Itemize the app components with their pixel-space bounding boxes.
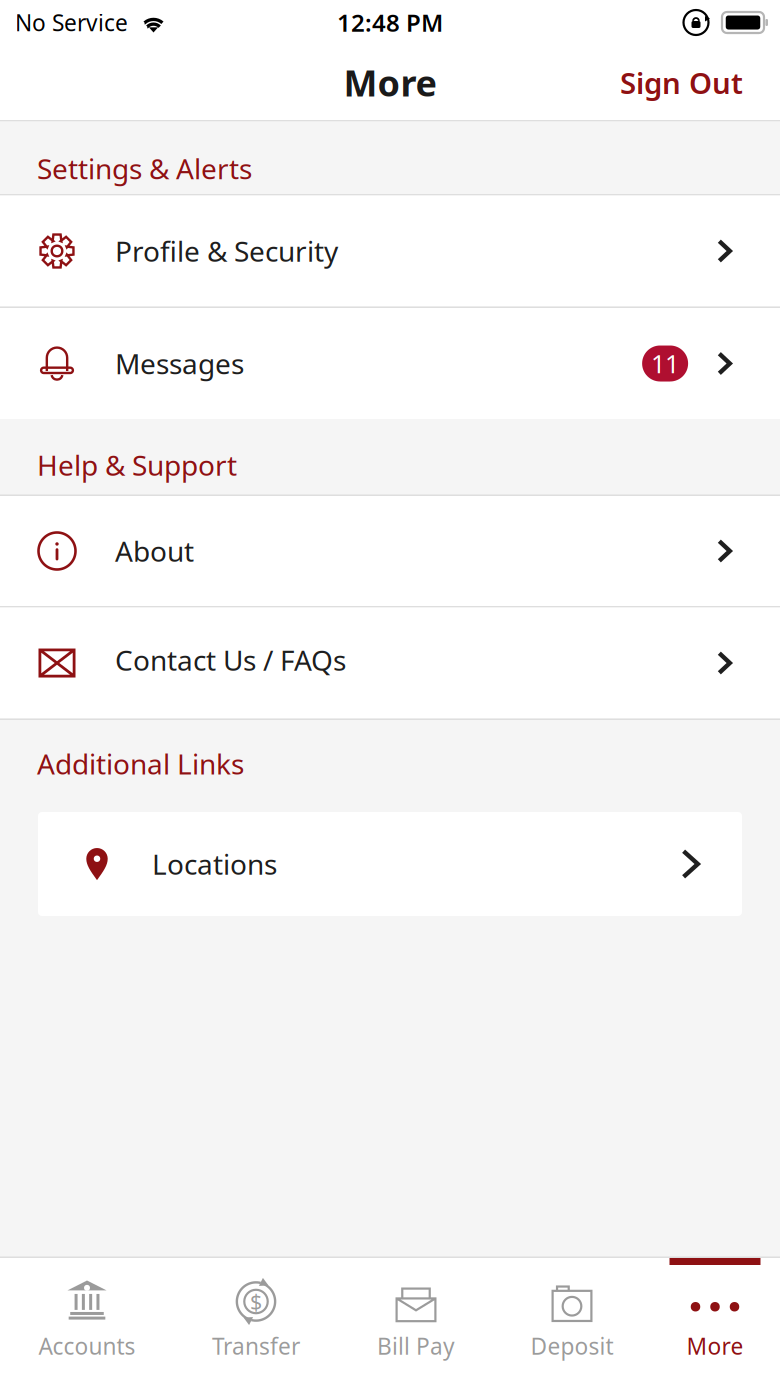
- button[interactable]: About: [0, 496, 780, 606]
- staticText: Profile & Security: [115, 232, 338, 270]
- staticText: Locations: [152, 845, 277, 883]
- staticText: More: [343, 59, 436, 106]
- staticText: No Service: [15, 7, 128, 37]
- staticText: $: [250, 1287, 262, 1316]
- button[interactable]: Bill Pay: [338, 1258, 494, 1387]
- button[interactable]: Deposit: [494, 1258, 650, 1387]
- staticText: About: [115, 532, 194, 570]
- button[interactable]: Contact Us / FAQs: [0, 607, 780, 718]
- button[interactable]: More: [650, 1258, 780, 1387]
- staticText: Sign Out: [620, 63, 743, 102]
- button[interactable]: Locations: [38, 812, 742, 916]
- staticText: 12:48 PM: [337, 7, 443, 38]
- button[interactable]: Profile & Security: [0, 195, 780, 306]
- staticText: Additional Links: [37, 745, 244, 782]
- button[interactable]: $: [174, 1258, 338, 1387]
- staticText: Deposit: [530, 1331, 613, 1361]
- button[interactable]: Sign Out: [620, 53, 780, 112]
- staticText: Messages: [115, 345, 244, 382]
- staticText: Contact Us / FAQs: [115, 641, 346, 679]
- staticText: More: [686, 1331, 743, 1361]
- staticText: 11: [651, 347, 679, 380]
- button[interactable]: Accounts: [0, 1258, 174, 1387]
- staticText: Help & Support: [37, 446, 237, 483]
- staticText: Bill Pay: [377, 1331, 455, 1361]
- staticText: Accounts: [38, 1331, 135, 1361]
- staticText: Settings & Alerts: [37, 150, 252, 187]
- button[interactable]: Messages: [0, 308, 780, 419]
- staticText: Transfer: [212, 1331, 300, 1361]
